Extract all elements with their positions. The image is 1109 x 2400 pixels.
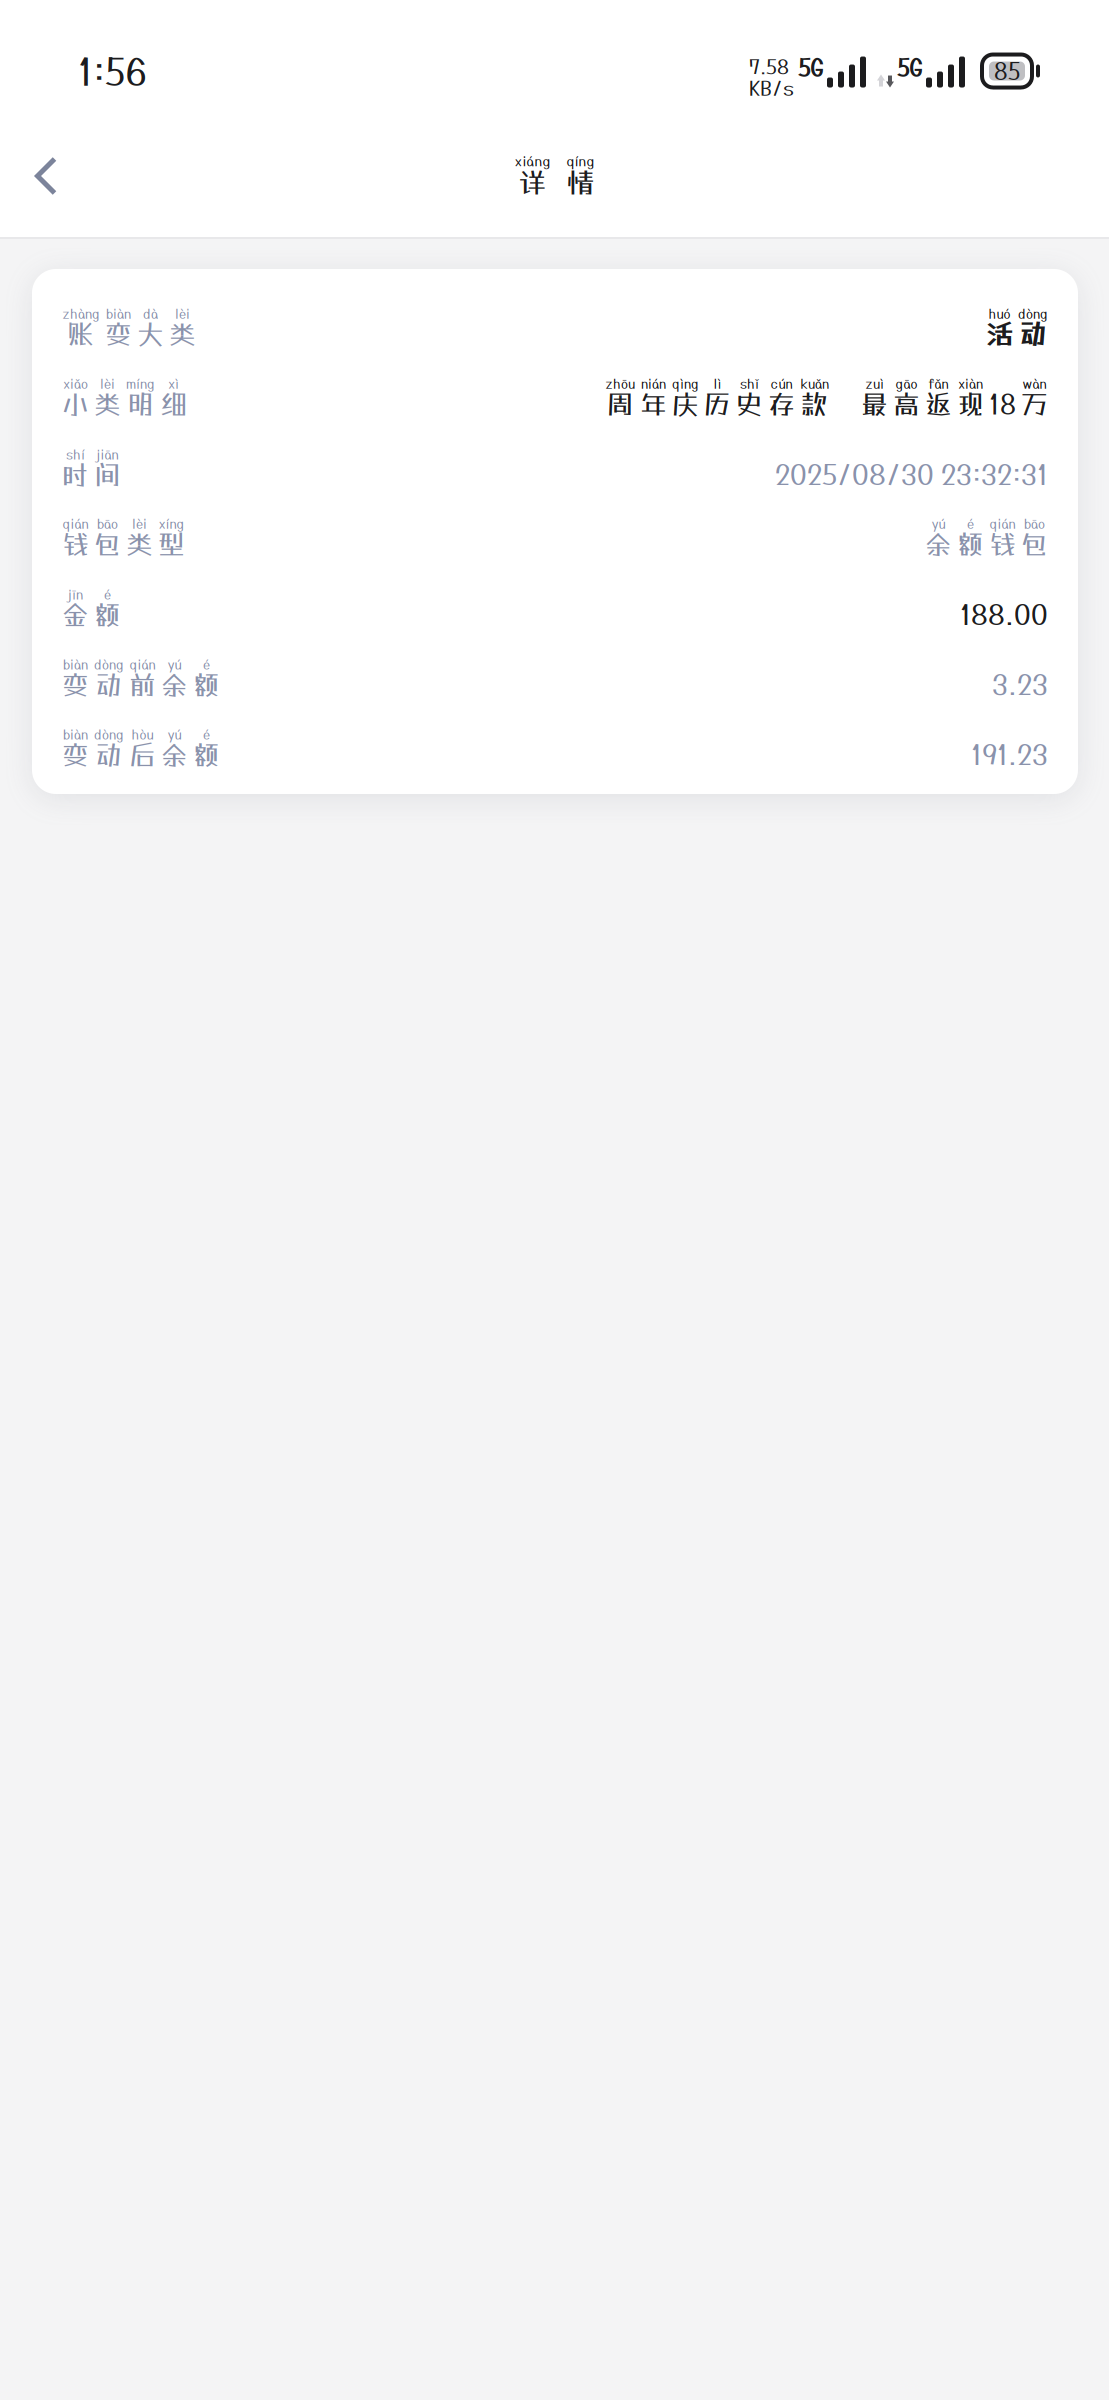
staticText: shǐ xyxy=(740,376,759,391)
staticText: yú xyxy=(931,516,945,531)
staticText: qìng xyxy=(672,376,699,391)
staticText: huó xyxy=(988,306,1010,321)
staticText: wàn xyxy=(1022,376,1046,391)
staticText: lèi xyxy=(132,516,147,531)
staticText: shí xyxy=(66,447,85,462)
staticText: bāo xyxy=(1024,516,1045,531)
staticText: xíng xyxy=(158,516,184,531)
staticText: 类 xyxy=(94,388,121,420)
staticText: 额 xyxy=(193,669,220,701)
staticText: 万 xyxy=(1021,388,1048,420)
staticText: 明 xyxy=(127,388,154,420)
staticText: 账 xyxy=(67,318,94,350)
staticText: biàn xyxy=(106,306,131,321)
staticText: 高 xyxy=(893,388,920,420)
staticText: 18 xyxy=(989,388,1016,420)
staticText: 动 xyxy=(1019,318,1046,350)
staticText: xì xyxy=(168,376,179,391)
staticText: 包 xyxy=(94,528,121,560)
staticText: 庆 xyxy=(672,388,699,420)
staticText: 返 xyxy=(925,388,952,420)
staticText: xiǎo xyxy=(63,376,88,391)
staticText: 时 xyxy=(62,459,89,491)
staticText: 5G xyxy=(798,54,823,81)
staticText: yú xyxy=(167,727,181,742)
staticText: 动 xyxy=(95,669,122,701)
staticText: yú xyxy=(167,657,181,672)
staticText: 钱 xyxy=(62,528,89,560)
staticText: 钱 xyxy=(989,528,1016,560)
staticText: 后 xyxy=(129,739,156,771)
staticText: lèi xyxy=(175,306,190,321)
staticText: qián xyxy=(62,516,88,531)
staticText: dòng xyxy=(1018,306,1048,321)
staticText: jīn xyxy=(68,587,83,602)
staticText: lèi xyxy=(100,376,115,391)
staticText: zhàng xyxy=(62,306,100,321)
staticText: dòng xyxy=(94,727,124,742)
staticText: 前 xyxy=(129,669,156,701)
staticText: 间 xyxy=(94,459,121,491)
staticText: 2025/08/30 23:32:31 xyxy=(775,457,1048,490)
staticText: 动 xyxy=(95,739,122,771)
staticText: xiáng xyxy=(514,153,550,169)
staticText: 85 xyxy=(994,58,1020,84)
staticText: 额 xyxy=(193,739,220,771)
staticText: 周 xyxy=(606,388,633,420)
staticText: 余 xyxy=(925,528,952,560)
staticText: KB/s xyxy=(749,76,794,100)
staticText: lì xyxy=(713,376,721,391)
staticText: 188.00 xyxy=(960,597,1048,630)
button[interactable]: Back xyxy=(0,115,92,237)
staticText: 大 xyxy=(137,318,164,350)
staticText: é xyxy=(203,727,210,742)
staticText: 变 xyxy=(62,669,89,701)
staticText: bāo xyxy=(97,516,118,531)
staticText: 现 xyxy=(957,388,984,420)
staticText: qián xyxy=(989,516,1015,531)
staticText: 小 xyxy=(62,388,89,420)
staticText: dòng xyxy=(94,657,124,672)
staticText: cún xyxy=(770,376,792,391)
staticText: 最 xyxy=(861,388,888,420)
staticText: biàn xyxy=(63,727,88,742)
staticText: 型 xyxy=(158,528,185,560)
staticText: 史 xyxy=(736,388,763,420)
staticText: 额 xyxy=(957,528,984,560)
staticText: é xyxy=(104,587,111,602)
staticText: 余 xyxy=(161,739,188,771)
staticText: 额 xyxy=(94,599,121,631)
staticText: hòu xyxy=(131,727,153,742)
staticText: 细 xyxy=(160,388,187,420)
staticText: zhōu xyxy=(605,376,635,391)
staticText: 年 xyxy=(640,388,667,420)
staticText: gāo xyxy=(895,376,917,391)
staticText: qián xyxy=(129,657,155,672)
staticText: 类 xyxy=(169,318,196,350)
staticText: 1:56 xyxy=(78,49,147,93)
staticText: fǎn xyxy=(928,376,948,391)
staticText: 7.58 xyxy=(749,54,789,78)
staticText: 情 xyxy=(566,166,594,199)
staticText: 活 xyxy=(986,318,1013,350)
staticText: 存 xyxy=(768,388,795,420)
staticText: biàn xyxy=(63,657,88,672)
staticText: 3.23 xyxy=(992,667,1048,700)
staticText: 历 xyxy=(704,388,731,420)
staticText: 余 xyxy=(161,669,188,701)
staticText: é xyxy=(203,657,210,672)
staticText: dà xyxy=(143,306,158,321)
staticText: zuì xyxy=(865,376,884,391)
staticText: qíng xyxy=(566,153,594,169)
staticText: 详 xyxy=(518,166,546,199)
staticText: jiān xyxy=(96,447,118,462)
staticText: 变 xyxy=(62,739,89,771)
staticText: míng xyxy=(126,376,155,391)
staticText: 包 xyxy=(1021,528,1048,560)
staticText: 5G xyxy=(897,54,922,81)
staticText: 变 xyxy=(105,318,132,350)
